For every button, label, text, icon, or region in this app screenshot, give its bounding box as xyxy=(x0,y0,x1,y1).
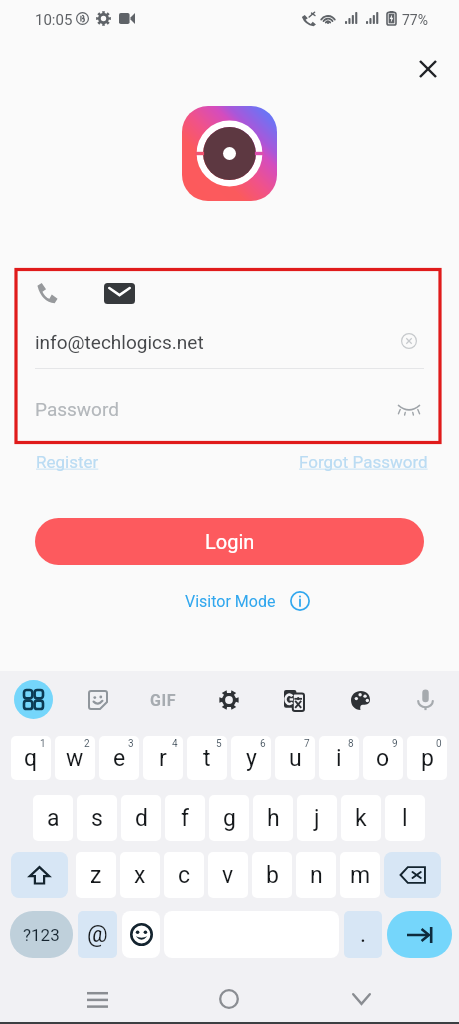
staticText: c xyxy=(178,862,191,889)
staticText: j xyxy=(314,805,320,832)
button[interactable]: g xyxy=(209,795,249,841)
button[interactable]: z xyxy=(76,852,116,898)
button[interactable]: Visitor Mode xyxy=(185,588,310,614)
button[interactable]: Forgot Password xyxy=(299,452,428,472)
staticText: m xyxy=(350,862,371,889)
staticText: n xyxy=(310,862,323,889)
button[interactable]: p xyxy=(407,736,447,780)
staticText: s xyxy=(91,805,103,832)
button[interactable]: Close xyxy=(408,49,448,89)
staticText: @ xyxy=(87,921,108,948)
button[interactable]: q xyxy=(11,736,51,780)
staticText: Register xyxy=(36,452,99,472)
staticText: d xyxy=(135,805,148,832)
staticText: q xyxy=(24,745,38,772)
staticText: u xyxy=(289,745,302,772)
button[interactable]: i xyxy=(319,736,359,780)
button[interactable]: Emoji xyxy=(122,911,160,958)
button[interactable]: t xyxy=(187,736,227,780)
staticText: y xyxy=(246,745,257,772)
button[interactable]: e xyxy=(99,736,139,780)
button[interactable]: Enter xyxy=(387,911,452,958)
button[interactable]: w xyxy=(55,736,95,780)
staticText: 1 xyxy=(40,738,46,750)
staticText: z xyxy=(90,862,102,889)
staticText: a xyxy=(47,805,60,832)
staticText: x xyxy=(134,862,146,889)
staticText: 3 xyxy=(128,738,134,750)
staticText: f xyxy=(181,805,189,832)
button[interactable]: u xyxy=(275,736,315,780)
staticText: . xyxy=(360,921,367,948)
button[interactable]: y xyxy=(231,736,271,780)
button[interactable]: m xyxy=(340,852,380,898)
staticText: v xyxy=(222,862,234,889)
button[interactable]: Backspace xyxy=(384,852,441,898)
button[interactable]: Settings xyxy=(210,681,248,719)
button[interactable]: n xyxy=(296,852,336,898)
button[interactable]: Translate xyxy=(275,681,313,719)
staticText: 4 xyxy=(172,738,178,750)
staticText: g xyxy=(223,805,236,832)
staticText: h xyxy=(267,805,280,832)
staticText: 2 xyxy=(84,738,90,750)
staticText: k xyxy=(355,805,367,832)
staticText: ?123 xyxy=(23,925,60,945)
button[interactable]: Hide keyboard xyxy=(336,974,386,1024)
button[interactable]: Voice input xyxy=(406,681,444,719)
staticText: 5 xyxy=(216,738,222,750)
staticText: GIF xyxy=(150,691,177,710)
button[interactable]: Login xyxy=(35,518,424,565)
button[interactable]: Show password xyxy=(392,392,426,426)
button[interactable]: s xyxy=(77,795,117,841)
button[interactable]: b xyxy=(252,852,292,898)
button[interactable]: r xyxy=(143,736,183,780)
staticText: Login xyxy=(205,530,255,553)
button[interactable]: Themes xyxy=(341,681,379,719)
button[interactable]: . xyxy=(344,911,382,958)
staticText: l xyxy=(402,805,408,832)
button[interactable]: d xyxy=(121,795,161,841)
staticText: p xyxy=(421,745,434,772)
button[interactable]: Recents xyxy=(72,974,122,1024)
staticText: 10:05 xyxy=(35,11,73,29)
button[interactable]: x xyxy=(120,852,160,898)
button[interactable]: GIF xyxy=(144,681,182,719)
staticText: Password xyxy=(35,398,119,420)
button[interactable]: ?123 xyxy=(10,911,73,958)
button[interactable]: c xyxy=(164,852,204,898)
staticText: r xyxy=(159,745,167,772)
staticText: 77% xyxy=(402,12,428,28)
staticText: 7 xyxy=(304,738,310,750)
button[interactable]: v xyxy=(208,852,248,898)
button[interactable]: Shift xyxy=(11,852,68,898)
button[interactable]: a xyxy=(33,795,73,841)
button[interactable]: Home xyxy=(204,974,254,1024)
staticText: 9 xyxy=(392,738,398,750)
button[interactable]: Keyboard apps xyxy=(14,680,53,719)
staticText: i xyxy=(336,745,342,772)
button[interactable]: f xyxy=(165,795,205,841)
staticText: 6 xyxy=(260,738,266,750)
button[interactable]: Phone login xyxy=(27,274,67,312)
button[interactable]: h xyxy=(253,795,293,841)
button[interactable]: j xyxy=(297,795,337,841)
staticText: 0 xyxy=(436,738,442,750)
button[interactable]: Stickers xyxy=(79,681,117,719)
staticText: w xyxy=(66,745,84,772)
button[interactable]: k xyxy=(341,795,381,841)
staticText: Forgot Password xyxy=(299,452,428,472)
staticText: e xyxy=(113,745,126,772)
button[interactable]: Clear text xyxy=(392,324,426,358)
button[interactable]: @ xyxy=(78,911,117,958)
button[interactable]: o xyxy=(363,736,403,780)
button[interactable]: Register xyxy=(36,452,99,472)
staticText: info@techlogics.net xyxy=(35,331,204,353)
staticText: 8 xyxy=(348,738,354,750)
staticText: Visitor Mode xyxy=(185,592,276,611)
button[interactable]: Email login xyxy=(96,274,142,312)
staticText: t xyxy=(203,745,211,772)
button[interactable]: l xyxy=(385,795,425,841)
staticText: o xyxy=(376,745,390,772)
